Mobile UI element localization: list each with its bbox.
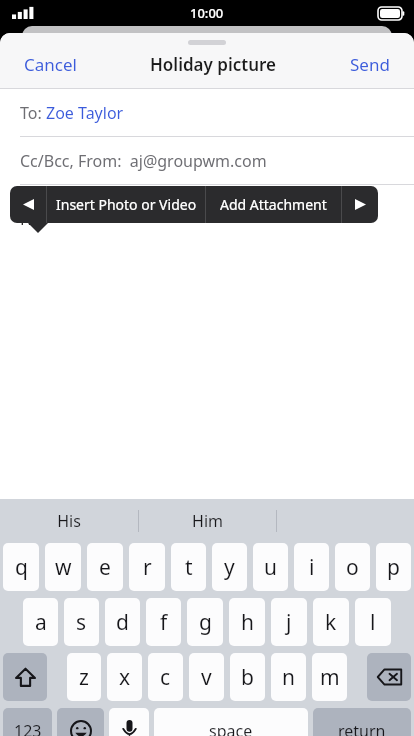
- button[interactable]: space: [154, 708, 308, 736]
- button[interactable]: r: [129, 543, 165, 591]
- button[interactable]: v: [189, 653, 224, 701]
- button[interactable]: w: [45, 543, 81, 591]
- button[interactable]: f: [146, 598, 181, 646]
- staticText: f: [160, 608, 168, 637]
- staticText: b: [241, 663, 254, 692]
- staticText: y: [224, 553, 235, 582]
- button[interactable]: e: [87, 543, 123, 591]
- staticText: return: [338, 720, 386, 736]
- staticText: l: [370, 608, 376, 637]
- staticText: space: [209, 720, 253, 736]
- button[interactable]: Previous: [10, 186, 46, 223]
- staticText: Holiday picture: [150, 53, 277, 76]
- button[interactable]: g: [187, 598, 223, 646]
- staticText: 10:00: [190, 4, 224, 22]
- button[interactable]: Dictate: [109, 708, 149, 736]
- button[interactable]: b: [230, 653, 265, 701]
- button[interactable]: n: [271, 653, 306, 701]
- button[interactable]: d: [105, 598, 140, 646]
- staticText: g: [199, 608, 212, 637]
- button[interactable]: t: [171, 543, 206, 591]
- button[interactable]: h: [229, 598, 265, 646]
- button[interactable]: Insert Photo or Video: [47, 186, 205, 223]
- staticText: Add Attachment: [220, 195, 327, 214]
- button[interactable]: Next: [342, 186, 378, 223]
- staticText: c: [160, 663, 171, 692]
- staticText: p: [387, 553, 400, 582]
- staticText: Zoe Taylor: [46, 102, 124, 124]
- button[interactable]: z: [67, 653, 101, 701]
- staticText: w: [55, 553, 72, 582]
- staticText: u: [264, 553, 277, 582]
- staticText: z: [79, 663, 89, 692]
- staticText: Insert Photo or Video: [56, 195, 197, 214]
- staticText: r: [143, 553, 152, 582]
- button[interactable]: Add Attachment: [206, 186, 341, 223]
- button[interactable]: i: [294, 543, 329, 591]
- staticText: q: [15, 553, 28, 582]
- button[interactable]: o: [335, 543, 370, 591]
- staticText: Hi: [20, 208, 36, 230]
- button[interactable]: j: [271, 598, 307, 646]
- button[interactable]: a: [23, 598, 58, 646]
- staticText: s: [76, 608, 87, 637]
- staticText: v: [201, 663, 212, 692]
- staticText: x: [119, 663, 131, 692]
- button[interactable]: c: [148, 653, 183, 701]
- button[interactable]: y: [212, 543, 247, 591]
- staticText: Send: [350, 53, 390, 76]
- staticText: Cc/Bcc, From: aj@groupwm.com: [20, 150, 267, 172]
- button[interactable]: Send: [346, 49, 394, 80]
- button[interactable]: Shift: [3, 653, 47, 701]
- staticText: j: [286, 608, 292, 637]
- staticText: 123: [14, 720, 42, 736]
- staticText: Him: [192, 510, 223, 532]
- staticText: His: [57, 510, 81, 532]
- staticText: h: [241, 608, 254, 637]
- staticText: t: [185, 553, 193, 582]
- button[interactable]: To:: [0, 89, 414, 136]
- button[interactable]: p: [376, 543, 411, 591]
- button[interactable]: Him: [139, 499, 276, 543]
- button[interactable]: Cancel: [20, 49, 81, 80]
- button[interactable]: l: [355, 598, 391, 646]
- button[interactable]: His: [0, 499, 138, 543]
- staticText: Cancel: [24, 53, 77, 76]
- staticText: k: [325, 608, 337, 637]
- button[interactable]: q: [3, 543, 39, 591]
- staticText: To:: [20, 102, 46, 124]
- button[interactable]: m: [312, 653, 347, 701]
- button[interactable]: Emoji: [57, 708, 104, 736]
- button[interactable]: s: [64, 598, 99, 646]
- staticText: n: [282, 663, 295, 692]
- staticText: d: [116, 608, 129, 637]
- staticText: o: [346, 553, 359, 582]
- button[interactable]: u: [253, 543, 288, 591]
- button[interactable]: k: [313, 598, 349, 646]
- staticText: m: [320, 663, 340, 692]
- staticText: a: [35, 608, 47, 637]
- button[interactable]: Delete: [367, 653, 411, 701]
- button[interactable]: 123: [3, 708, 52, 736]
- staticText: i: [309, 553, 315, 582]
- button[interactable]: return: [313, 708, 411, 736]
- button[interactable]: Cc/Bcc, From: aj@groupwm.com: [0, 137, 414, 184]
- staticText: e: [99, 553, 111, 582]
- button[interactable]: x: [107, 653, 142, 701]
